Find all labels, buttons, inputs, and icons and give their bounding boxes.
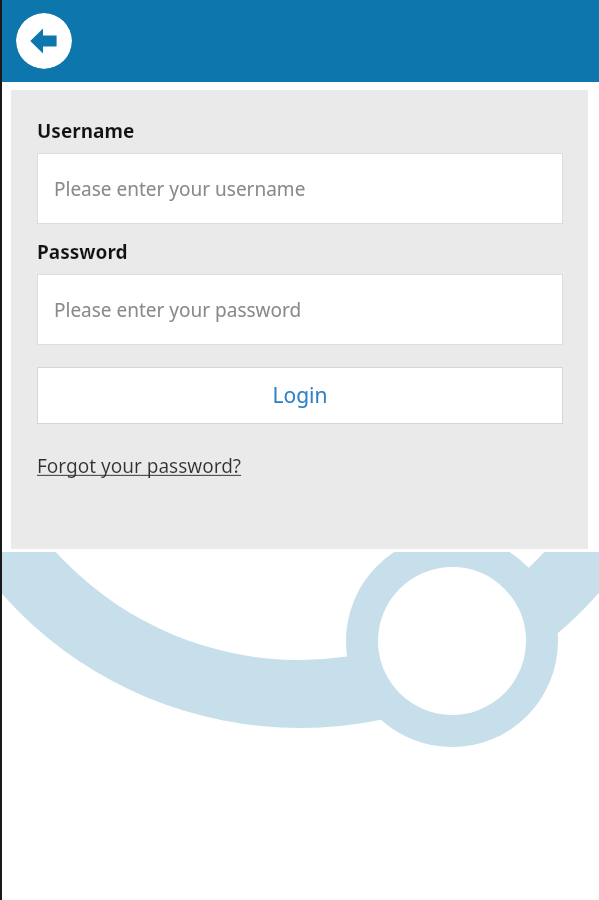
button[interactable]: Please enter your password [37,274,563,345]
button[interactable]: Forgot your password? [37,453,242,479]
button[interactable]: Back [16,13,72,69]
staticText: Login [272,381,328,410]
staticText: Username [37,118,135,144]
staticText: Password [37,239,128,265]
button[interactable]: Login [37,367,563,424]
button[interactable]: Please enter your username [37,153,563,224]
staticText: Please enter your username [54,176,306,202]
staticText: Please enter your password [54,297,302,323]
staticText: Forgot your password? [37,453,242,479]
